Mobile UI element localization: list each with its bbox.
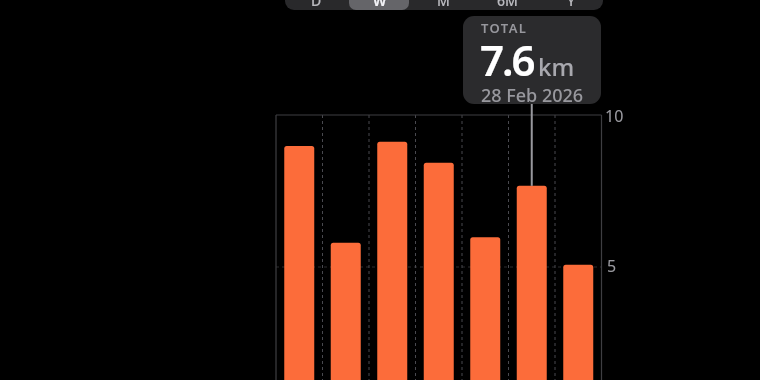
button[interactable]: TOTAL <box>463 16 601 104</box>
button[interactable]: M <box>411 0 475 10</box>
staticText: km <box>538 50 575 83</box>
staticText: W <box>373 0 387 10</box>
staticText: Y <box>567 0 576 10</box>
staticText: 28 Feb 2026 <box>481 83 584 104</box>
staticText: 5 <box>607 255 617 277</box>
staticText: M <box>437 0 450 10</box>
button[interactable] <box>349 0 409 10</box>
button[interactable]: W <box>348 0 411 10</box>
button[interactable]: Y <box>539 0 603 10</box>
button[interactable]: D <box>285 0 348 10</box>
button[interactable]: 6M <box>475 0 539 10</box>
staticText: 7.6 <box>480 31 534 88</box>
staticText: 10 <box>605 105 624 127</box>
staticText: D <box>311 0 322 10</box>
staticText: TOTAL <box>481 19 528 37</box>
staticText: 6M <box>497 0 518 10</box>
